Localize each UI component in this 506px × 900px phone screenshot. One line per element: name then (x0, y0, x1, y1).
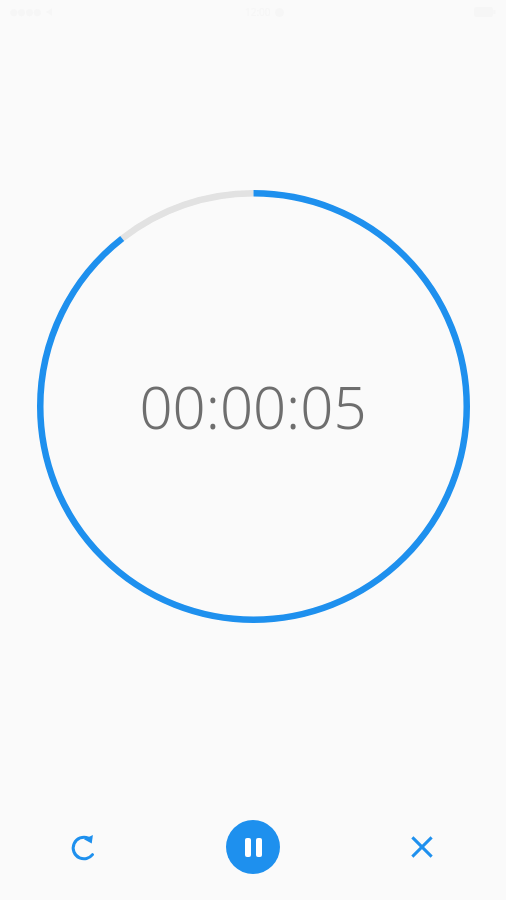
staticText: 00:00:05 (139, 367, 367, 446)
button[interactable]: Close (337, 792, 506, 900)
button[interactable]: Pause (226, 820, 280, 874)
button[interactable]: Reset (0, 792, 168, 900)
